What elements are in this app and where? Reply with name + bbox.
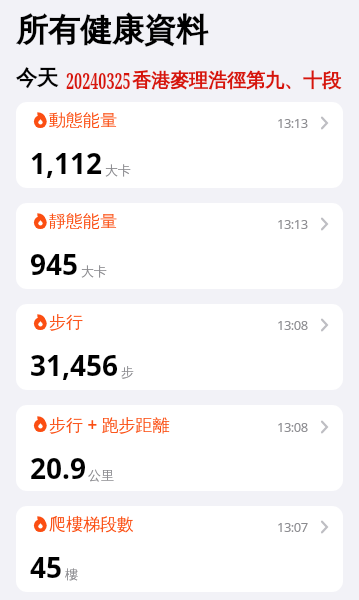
button[interactable]: 動態能量	[16, 102, 343, 188]
staticText: 20240325	[66, 65, 131, 95]
staticText: 45	[30, 548, 63, 586]
staticText: 爬樓梯段數	[49, 514, 134, 535]
button[interactable]: 靜態能量	[16, 203, 343, 289]
staticText: 1,112	[30, 144, 103, 182]
staticText: 大卡	[105, 162, 131, 178]
staticText: 31,456	[30, 346, 119, 384]
staticText: 所有健康資料	[16, 10, 208, 50]
staticText: 13:13	[277, 215, 308, 233]
staticText: 動態能量	[49, 110, 117, 131]
staticText: 樓	[65, 566, 78, 582]
button[interactable]: 步行	[16, 304, 343, 390]
button[interactable]: 步行 + 跑步距離	[16, 405, 343, 491]
staticText: 945	[30, 245, 79, 283]
staticText: 公里	[88, 467, 114, 483]
staticText: 步	[121, 364, 134, 380]
staticText: 靜態能量	[49, 211, 117, 232]
staticText: 今天	[16, 65, 58, 91]
staticText: 香港麥理浩徑第九、十段	[132, 69, 341, 93]
staticText: 13:07	[277, 518, 308, 536]
staticText: 13:08	[277, 316, 308, 334]
staticText: 大卡	[81, 263, 107, 279]
staticText: 步行	[49, 312, 83, 333]
staticText: 13:08	[277, 418, 308, 436]
staticText: 13:13	[277, 114, 308, 132]
staticText: 步行 + 跑步距離	[49, 413, 170, 436]
staticText: 20.9	[30, 449, 86, 487]
button[interactable]: 爬樓梯段數	[16, 506, 343, 592]
